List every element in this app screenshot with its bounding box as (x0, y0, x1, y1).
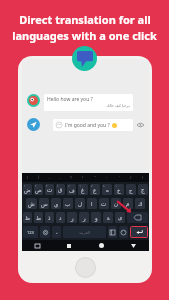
button[interactable]: Comma (52, 226, 61, 238)
staticText: ؟ (70, 175, 73, 180)
staticText: ظ (25, 215, 31, 221)
staticText: ٥ (68, 184, 70, 187)
staticText: خ (117, 187, 121, 193)
button[interactable]: ذ (45, 212, 54, 223)
button[interactable]: ى (115, 212, 125, 223)
button[interactable]: Backspace (127, 212, 148, 223)
button[interactable]: ز (67, 212, 77, 223)
button[interactable]: Share translation (27, 118, 40, 131)
staticText: ن (114, 201, 119, 207)
button[interactable]: ة (103, 212, 113, 223)
button[interactable]: ٣ (45, 184, 54, 195)
button[interactable]: ١ (23, 184, 32, 195)
staticText: ه (106, 187, 109, 193)
button[interactable]: Switch keyboard (22, 240, 53, 251)
staticText: - (60, 175, 62, 180)
button[interactable]: ر (79, 212, 89, 223)
button[interactable]: Settings (40, 226, 50, 238)
staticText: العربية (79, 230, 90, 235)
staticText: ح (129, 187, 133, 193)
staticText: ١ (24, 184, 26, 187)
button[interactable]: ٤ (56, 184, 65, 195)
button[interactable]: ج (138, 184, 148, 195)
staticText: ٤ (57, 184, 59, 187)
button[interactable]: Enter (130, 226, 148, 238)
staticText: ر (83, 215, 86, 221)
staticText: Direct translation for all (19, 12, 151, 27)
button[interactable]: ب (63, 198, 73, 209)
staticText: ، (49, 175, 51, 180)
staticText: ي (54, 201, 59, 207)
staticText: / (130, 175, 132, 180)
button[interactable]: Clipboard (108, 226, 117, 238)
button[interactable]: ٢ (34, 184, 43, 195)
staticText: س (41, 201, 48, 207)
staticText: ة (107, 215, 110, 221)
staticText: د (59, 215, 62, 221)
button[interactable]: ت (99, 198, 109, 209)
button[interactable]: ا (22, 173, 33, 182)
staticText: languages with a one click (12, 28, 157, 43)
button[interactable]: Avatar (27, 94, 40, 107)
staticText: ض (24, 187, 31, 193)
staticText: ج (141, 187, 145, 193)
button[interactable]: Home (85, 240, 117, 251)
button[interactable]: Emoji (119, 226, 128, 238)
staticText: ف (69, 187, 75, 193)
button[interactable]: Back (117, 240, 149, 251)
button[interactable]: / (125, 173, 137, 182)
button[interactable]: ٠ (126, 184, 136, 195)
staticText: ش (28, 201, 35, 207)
staticText: ب (65, 201, 71, 207)
button[interactable]: م (123, 198, 133, 209)
staticText: ٩ (115, 184, 117, 187)
button[interactable]: ٧ (90, 184, 100, 195)
staticText: " (94, 175, 96, 180)
staticText: ا (27, 175, 29, 180)
button[interactable]: Space (63, 226, 106, 238)
button[interactable]: و (91, 212, 101, 223)
button[interactable]: ، (44, 173, 55, 182)
button[interactable]: I'm good and you ? (53, 119, 133, 131)
staticText: غ (81, 187, 85, 193)
staticText: ك (138, 201, 143, 207)
button[interactable]: " (89, 173, 101, 182)
button[interactable]: ! (77, 173, 89, 182)
button[interactable]: ٨ (102, 184, 112, 195)
staticText: ث (47, 187, 53, 193)
button[interactable]: أ (33, 173, 44, 182)
button[interactable]: ش (26, 198, 37, 209)
staticText: ٠ (127, 184, 129, 187)
button[interactable]: ك (135, 198, 145, 209)
button[interactable]: ٩ (114, 184, 124, 195)
button[interactable]: ٥ (67, 184, 76, 195)
button[interactable]: Hello how are you ? (44, 94, 133, 111)
button[interactable]: Hide (136, 120, 145, 129)
button[interactable]: ي (51, 198, 61, 209)
button[interactable]: ٦ (78, 184, 88, 195)
button[interactable]: ظ (23, 212, 32, 223)
staticText: ل (78, 201, 82, 207)
staticText: I'm good and you ? (65, 122, 110, 129)
staticText: ' (119, 175, 120, 180)
button[interactable]: ( (137, 173, 149, 182)
button[interactable]: ط (34, 212, 43, 223)
button[interactable]: Numbers (23, 226, 38, 238)
staticText: ٨ (103, 184, 105, 187)
button[interactable]: Home button (75, 257, 96, 278)
staticText: Hello how are you ? (47, 96, 93, 103)
button[interactable]: د (56, 212, 65, 223)
button[interactable]: ا (87, 198, 97, 209)
button[interactable]: ن (111, 198, 121, 209)
button[interactable]: App icon (72, 46, 97, 71)
staticText: ى (118, 215, 123, 221)
button[interactable]: ؟ (66, 173, 77, 182)
button[interactable]: Recent apps (53, 240, 85, 251)
staticText: : (106, 175, 108, 180)
staticText: ( (142, 175, 144, 180)
button[interactable]: س (39, 198, 49, 209)
button[interactable]: ل (75, 198, 85, 209)
